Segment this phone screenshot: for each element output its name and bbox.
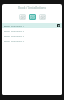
staticText: Book / Installations (18, 6, 46, 10)
staticText: Engineers 2 (11, 29, 25, 32)
button[interactable]: List view (19, 14, 26, 20)
staticText: Engineers 3 (11, 34, 25, 37)
staticText: Book (4, 29, 10, 32)
staticText: Engineers 4 (11, 39, 25, 42)
staticText: Book (4, 24, 10, 27)
staticText: Book (4, 39, 10, 42)
staticText: Engineers 1 (11, 24, 25, 27)
button[interactable]: Book (2, 28, 62, 33)
button[interactable]: Row options (57, 24, 60, 27)
button[interactable]: Book (2, 33, 62, 38)
staticText: Book (4, 34, 10, 37)
button[interactable]: Map view (39, 14, 46, 20)
button[interactable]: Book (2, 38, 62, 43)
button[interactable]: Book (2, 23, 62, 28)
button[interactable]: Grid view (29, 14, 36, 20)
